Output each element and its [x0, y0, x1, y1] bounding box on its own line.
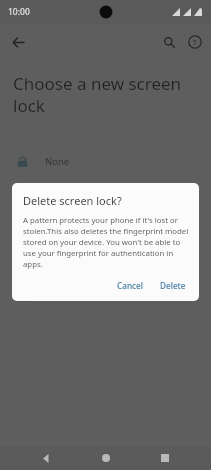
staticText: Cancel: [117, 280, 143, 291]
staticText: Password: [45, 291, 88, 304]
button[interactable]: None: [0, 146, 211, 176]
button[interactable]: Search: [156, 29, 182, 55]
staticText: Choose a new screen lock: [13, 72, 195, 117]
staticText: None: [45, 155, 70, 168]
button[interactable]: Recent apps: [152, 446, 178, 470]
button[interactable]: Navigate up: [4, 28, 32, 56]
button[interactable]: Delete: [154, 276, 192, 295]
staticText: Delete: [160, 280, 186, 291]
button[interactable]: Home: [93, 446, 119, 470]
button[interactable]: Help: [182, 29, 208, 55]
button[interactable]: Password: [0, 282, 211, 312]
staticText: Delete screen lock?: [23, 193, 122, 208]
staticText: ?: [193, 37, 197, 47]
button[interactable]: Cancel: [111, 276, 149, 295]
button[interactable]: Back: [33, 446, 59, 470]
staticText: 10:00: [8, 6, 30, 18]
staticText: A pattern protects your phone if it's lo…: [23, 215, 191, 270]
